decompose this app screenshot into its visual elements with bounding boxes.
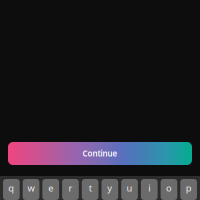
button[interactable]: y [101, 179, 118, 200]
staticText: p [186, 182, 192, 194]
staticText: e [48, 182, 53, 194]
button[interactable]: o [161, 179, 177, 200]
button[interactable]: w [23, 179, 39, 200]
staticText: t [89, 182, 92, 194]
staticText: r [68, 182, 72, 194]
button[interactable]: e [42, 179, 59, 200]
button[interactable]: t [82, 179, 98, 200]
button[interactable]: u [121, 179, 138, 200]
staticText: Continue [82, 148, 117, 159]
staticText: y [107, 182, 112, 194]
button[interactable]: p [180, 179, 197, 200]
button[interactable]: q [3, 179, 20, 200]
staticText: w [28, 182, 35, 194]
staticText: o [166, 182, 172, 194]
button[interactable]: i [141, 179, 158, 200]
staticText: q [8, 182, 14, 194]
button[interactable]: Continue [8, 142, 192, 165]
staticText: u [127, 182, 133, 194]
button[interactable]: r [62, 179, 79, 200]
staticText: i [148, 182, 150, 194]
